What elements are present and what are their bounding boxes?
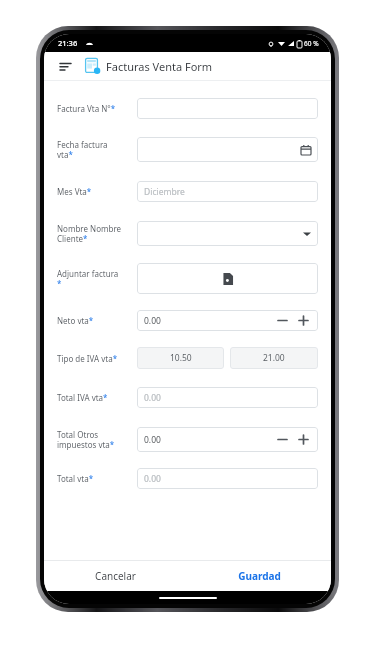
staticText: 0.00 [144,315,161,327]
button[interactable]: 21.00 [230,347,318,369]
staticText: 10.50 [170,352,192,364]
staticText: Cancelar [95,569,136,583]
button[interactable]: Guardad [187,561,331,591]
button[interactable]: Decrease [275,313,290,328]
staticText: 0.00 [144,473,161,485]
staticText: Mes Vta* [57,186,92,197]
button[interactable]: Increase [296,313,311,328]
button[interactable]: Cancelar [44,561,187,591]
staticText: 21.00 [263,352,285,364]
button[interactable]: 10.50 [137,347,224,369]
button[interactable]: 0.00 [137,387,318,408]
staticText: Total vta* [57,473,94,484]
staticText: Fecha factura vta* [57,139,108,160]
staticText: Factura Vta N°* [57,103,116,114]
button[interactable]: Menu [56,57,74,75]
staticText: Total Otros impuestos vta* [57,429,115,450]
staticText: Total IVA vta* [57,392,108,403]
staticText: Guardad [238,569,281,583]
button[interactable]: Decrease [275,432,290,447]
button[interactable] [137,98,318,119]
staticText: Nombre Nombre Cliente* [57,223,122,244]
staticText: Diciembre [144,186,185,198]
button[interactable]: Adjuntar factura [137,263,318,294]
staticText: 21:36 [58,38,78,48]
staticText: Neto vta* [57,315,94,326]
staticText: 60 % [304,39,319,48]
staticText: Facturas Venta Form [106,59,213,74]
staticText: Tipo de IVA vta* [57,353,118,364]
staticText: 0.00 [144,392,161,404]
staticText: Adjuntar factura * [57,268,119,289]
button[interactable]: 0.00 [137,310,318,331]
button[interactable] [137,221,318,246]
button[interactable]: 0.00 [137,427,318,452]
button[interactable]: Increase [296,432,311,447]
button[interactable]: Diciembre [137,181,318,202]
button[interactable] [137,137,318,162]
staticText: 0.00 [144,434,161,446]
button[interactable]: 0.00 [137,468,318,489]
